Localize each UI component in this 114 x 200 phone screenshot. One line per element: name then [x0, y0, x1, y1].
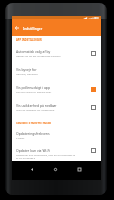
- button[interactable]: Automatisk valg af by: [12, 44, 101, 62]
- button[interactable]: Back: [24, 161, 40, 177]
- staticText: Opdater kun via Wi-Fi: [16, 148, 51, 153]
- staticText: Gættes ud fra din nuværende position: [16, 54, 61, 57]
- button[interactable]: Toggle: [88, 84, 99, 95]
- staticText: Indstillinger: [23, 26, 43, 30]
- staticText: GENERELLE INDSTILLINGER: [16, 122, 52, 124]
- staticText: APP INDSTILLINGER: [16, 38, 42, 42]
- button[interactable]: Toggle: [88, 102, 99, 113]
- staticText: Herning, Denmark: [16, 72, 38, 75]
- staticText: Vis byvejr for: [16, 67, 37, 72]
- button[interactable]: Recents: [71, 161, 87, 177]
- staticText: Viser en indikator for usikkerhed: [16, 108, 55, 111]
- staticText: Opdaterer kun automatisk, hvis du er for…: [16, 153, 77, 159]
- staticText: 2 timer: [16, 136, 25, 139]
- button[interactable]: Opdateringsfrekvens: [12, 124, 101, 145]
- button[interactable]: Back: [12, 19, 21, 36]
- button[interactable]: Vis byvejr for: [12, 62, 101, 80]
- button[interactable]: Opdater kun via Wi-Fi: [12, 145, 101, 161]
- staticText: Automatisk valg af by: [16, 49, 51, 54]
- staticText: Vis usikkerhed på nedbør: [16, 103, 57, 108]
- button[interactable]: Vis pollenudsigt i app: [12, 80, 101, 98]
- staticText: Kan kun vises for Danske byer: [16, 90, 52, 93]
- button[interactable]: Vis usikkerhed på nedbør: [12, 98, 101, 116]
- button[interactable]: Toggle: [88, 145, 99, 156]
- staticText: Vis pollenudsigt i app: [16, 85, 51, 90]
- staticText: Opdateringsfrekvens: [16, 131, 50, 136]
- button[interactable]: Toggle: [88, 48, 99, 59]
- button[interactable]: Home: [47, 161, 63, 177]
